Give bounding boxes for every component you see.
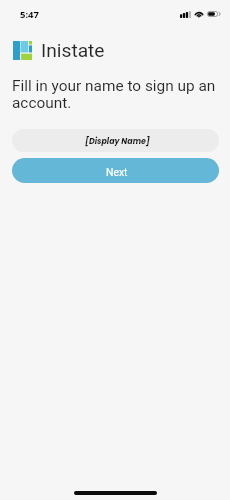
staticText: [Display Name] bbox=[85, 136, 150, 147]
staticText: 5:47 bbox=[20, 8, 39, 21]
staticText: Fill in your name to sign up an account. bbox=[12, 77, 218, 111]
button[interactable]: [Display Name] bbox=[12, 129, 219, 152]
other: Inistate logo bbox=[13, 41, 32, 60]
staticText: Next bbox=[106, 166, 128, 178]
staticText: Inistate bbox=[41, 39, 105, 62]
button[interactable]: Next bbox=[12, 158, 219, 183]
